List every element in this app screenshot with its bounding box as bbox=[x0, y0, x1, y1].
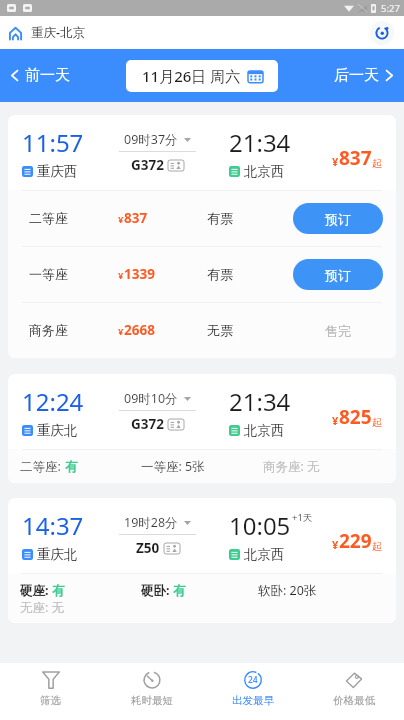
staticText: 出发最早 bbox=[232, 694, 274, 707]
staticText: 软卧: 20张 bbox=[258, 582, 317, 599]
staticText: 一等座 bbox=[29, 266, 68, 282]
staticText: 预订 bbox=[325, 211, 351, 227]
staticText: 北京西 bbox=[244, 546, 285, 563]
staticText: 重庆西 bbox=[37, 163, 78, 180]
staticText: 有 bbox=[52, 583, 65, 599]
button[interactable]: 后一天 bbox=[329, 58, 398, 93]
staticText: 耗时最短 bbox=[131, 694, 173, 707]
staticText: 24 bbox=[248, 674, 258, 686]
staticText: 北京西 bbox=[244, 163, 285, 180]
staticText: 商务座: 无 bbox=[263, 458, 320, 475]
button[interactable]: 24 bbox=[202, 663, 303, 714]
staticText: 有 bbox=[65, 459, 78, 475]
staticText: 09时10分 bbox=[124, 390, 178, 407]
staticText: 21:34 bbox=[229, 126, 291, 159]
staticText: 二等座 bbox=[29, 210, 68, 226]
staticText: 商务座 bbox=[29, 322, 68, 338]
button[interactable]: 11:57 bbox=[8, 115, 396, 358]
staticText: 09时37分 bbox=[124, 131, 178, 148]
staticText: 重庆-北京 bbox=[31, 24, 86, 41]
staticText: 14:37 bbox=[22, 509, 84, 542]
staticText: 837 bbox=[339, 145, 372, 171]
button[interactable]: 14:37 bbox=[8, 498, 396, 623]
staticText: 起 bbox=[372, 416, 382, 429]
staticText: 有票 bbox=[207, 210, 233, 226]
staticText: 11月26日 周六 bbox=[142, 66, 241, 86]
staticText: 837 bbox=[124, 209, 148, 227]
staticText: 19时28分 bbox=[124, 514, 178, 531]
staticText: 硬座: bbox=[20, 582, 52, 599]
button[interactable]: 前一天 bbox=[6, 58, 75, 93]
button[interactable]: 筛选 bbox=[0, 663, 101, 714]
staticText: 前一天 bbox=[25, 66, 70, 85]
staticText: 有 bbox=[173, 583, 186, 599]
button[interactable]: 预订 bbox=[293, 259, 383, 290]
staticText: ¥ bbox=[332, 154, 339, 169]
staticText: 起 bbox=[372, 540, 382, 553]
button[interactable]: 耗时最短 bbox=[101, 663, 202, 714]
staticText: 12:24 bbox=[22, 385, 84, 418]
staticText: ¥ bbox=[332, 413, 339, 428]
staticText: 筛选 bbox=[40, 694, 61, 707]
button[interactable]: Refresh bbox=[370, 21, 394, 45]
staticText: 售完 bbox=[325, 323, 351, 339]
staticText: 5:27 bbox=[381, 2, 400, 15]
staticText: 1339 bbox=[124, 265, 155, 283]
staticText: 硬卧: bbox=[141, 582, 173, 599]
staticText: +1天 bbox=[292, 511, 313, 524]
staticText: ¥ bbox=[118, 269, 124, 282]
staticText: 229 bbox=[339, 528, 372, 554]
button[interactable]: Home bbox=[7, 25, 23, 41]
staticText: 21:34 bbox=[229, 385, 291, 418]
button[interactable]: 价格最低 bbox=[303, 663, 404, 714]
staticText: ¥ bbox=[118, 213, 124, 226]
button[interactable]: 12:24 bbox=[8, 374, 396, 483]
button[interactable]: 11月26日 周六 bbox=[126, 60, 278, 92]
staticText: 11:57 bbox=[22, 126, 84, 159]
staticText: Z50 bbox=[136, 539, 160, 557]
button[interactable]: 预订 bbox=[293, 203, 383, 234]
staticText: 预订 bbox=[325, 267, 351, 283]
staticText: 10:05 bbox=[229, 509, 291, 542]
staticText: 二等座: bbox=[20, 458, 65, 475]
staticText: 重庆北 bbox=[37, 546, 78, 563]
staticText: 2668 bbox=[124, 321, 155, 339]
staticText: 无座: 无 bbox=[20, 599, 65, 615]
staticText: 有票 bbox=[207, 266, 233, 282]
staticText: ¥ bbox=[118, 325, 124, 338]
staticText: 起 bbox=[372, 157, 382, 170]
staticText: G372 bbox=[131, 415, 164, 433]
staticText: 无票 bbox=[207, 322, 233, 338]
staticText: 北京西 bbox=[244, 422, 285, 439]
staticText: 一等座: 5张 bbox=[141, 458, 205, 475]
staticText: 后一天 bbox=[334, 66, 379, 85]
staticText: 价格最低 bbox=[333, 694, 375, 707]
staticText: G372 bbox=[131, 156, 164, 174]
staticText: 825 bbox=[339, 404, 372, 430]
staticText: 重庆北 bbox=[37, 422, 78, 439]
staticText: ¥ bbox=[332, 537, 339, 552]
